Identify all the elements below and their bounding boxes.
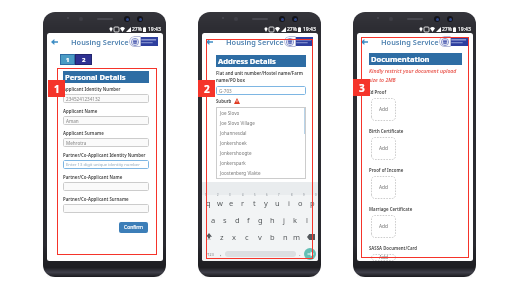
button[interactable]: v xyxy=(255,231,265,242)
staticText: 8 xyxy=(291,193,293,197)
staticText: x xyxy=(232,232,236,242)
button[interactable]: o xyxy=(295,197,305,208)
button[interactable]: s xyxy=(220,214,230,225)
button[interactable]: Jonkershoogte xyxy=(220,148,305,158)
button[interactable]: b xyxy=(267,231,277,242)
button[interactable] xyxy=(63,204,149,213)
staticText: , xyxy=(220,250,222,258)
staticText: j xyxy=(283,215,285,225)
button[interactable]: t xyxy=(249,197,259,208)
button[interactable]: j xyxy=(279,214,289,225)
button[interactable]: Jonkershoek xyxy=(220,138,305,148)
staticText: Partner/Co-Applicant Identity Number xyxy=(63,152,146,158)
staticText: 2 xyxy=(217,193,219,197)
button[interactable]: Mehrotra xyxy=(63,138,149,147)
button[interactable]: Add xyxy=(371,176,396,199)
button[interactable]: z xyxy=(217,231,227,242)
staticText: e xyxy=(229,198,234,208)
staticText: z xyxy=(220,232,224,242)
staticText: Personal Details xyxy=(65,72,126,82)
button[interactable]: Shift xyxy=(203,231,214,242)
staticText: Partner/Co-Applicant Surname xyxy=(63,196,129,202)
staticText: 7 xyxy=(278,193,280,197)
staticText: . xyxy=(299,250,301,258)
staticText: Add xyxy=(379,254,388,261)
button[interactable]: d xyxy=(232,214,242,225)
button[interactable]: 2345241234132 xyxy=(63,94,149,103)
button[interactable]: Backspace xyxy=(305,231,317,242)
button[interactable]: Joe Slovo xyxy=(220,108,305,118)
button[interactable]: Add xyxy=(371,254,396,261)
button[interactable]: Aman xyxy=(63,116,149,125)
button[interactable]: ?123 xyxy=(204,249,216,259)
button[interactable]: m xyxy=(292,231,302,242)
staticText: Add xyxy=(379,106,388,113)
staticText: Partner/Co-Applicant Name xyxy=(63,174,123,180)
staticText: Confirm xyxy=(124,224,144,231)
staticText: Marriage Certificate xyxy=(369,206,413,212)
button[interactable]: h xyxy=(267,214,277,225)
button[interactable]: Jonkerspark xyxy=(220,158,305,168)
staticText: b xyxy=(270,232,275,242)
button[interactable]: a xyxy=(208,214,218,225)
button[interactable]: 1 xyxy=(60,54,75,65)
button[interactable]: x xyxy=(229,231,239,242)
button[interactable]: Add xyxy=(371,98,396,121)
staticText: Id Proof xyxy=(369,89,387,95)
staticText: Address Details xyxy=(218,56,276,66)
staticText: Kindly restrict your document upload siz… xyxy=(369,68,457,84)
staticText: Enter 13 digit unique identity number xyxy=(66,162,140,168)
button[interactable]: i xyxy=(284,197,294,208)
button[interactable]: Joe Slovo Village xyxy=(220,118,305,128)
staticText: Jonkerspark xyxy=(220,160,246,166)
button[interactable]: p xyxy=(307,197,317,208)
staticText: 3 xyxy=(359,81,365,95)
button[interactable]: e xyxy=(226,197,236,208)
staticText: l xyxy=(306,215,308,225)
button[interactable]: w xyxy=(215,197,225,208)
staticText: G-703 xyxy=(219,88,232,94)
staticText: 4 xyxy=(242,193,244,197)
button[interactable]: Enter xyxy=(304,248,316,260)
staticText: 1 xyxy=(54,82,60,96)
button[interactable] xyxy=(63,182,149,191)
button[interactable]: Add xyxy=(371,137,396,160)
staticText: Applicant Identity Number xyxy=(63,86,121,92)
button[interactable]: Back xyxy=(204,36,215,47)
button[interactable]: q xyxy=(203,197,213,208)
staticText: 0 xyxy=(315,193,317,197)
button[interactable]: Confirm xyxy=(119,222,148,233)
staticText: v xyxy=(258,232,262,242)
button[interactable]: c xyxy=(242,231,252,242)
button[interactable]: f xyxy=(243,214,253,225)
staticText: Housing Service xyxy=(381,37,439,47)
staticText: k xyxy=(293,215,298,225)
staticText: Joe Slovo Village xyxy=(220,120,255,126)
staticText: Applicant Name xyxy=(63,108,98,114)
button[interactable]: Enter 13 digit unique identity number xyxy=(63,160,149,169)
staticText: n xyxy=(283,232,288,242)
staticText: Jonkershoek xyxy=(220,140,247,146)
button[interactable]: g xyxy=(255,214,265,225)
button[interactable]: Back xyxy=(49,36,60,47)
button[interactable]: Back xyxy=(359,36,370,47)
button[interactable]: 2 xyxy=(75,54,92,65)
button[interactable]: y xyxy=(261,197,271,208)
button[interactable]: Johannesdal xyxy=(220,128,305,138)
button[interactable]: l xyxy=(302,214,312,225)
staticText: Applicant Surname xyxy=(63,130,104,136)
button[interactable]: Joostenberg Vlakte xyxy=(220,168,305,178)
button[interactable]: r xyxy=(238,197,248,208)
button[interactable]: n xyxy=(280,231,290,242)
button[interactable]: u xyxy=(272,197,282,208)
staticText: g xyxy=(258,215,263,225)
button[interactable]: G-703 xyxy=(216,86,306,95)
staticText: ?123 xyxy=(206,252,214,257)
button[interactable]: k xyxy=(290,214,300,225)
staticText: Documentation xyxy=(371,54,430,64)
staticText: 2345241234132 xyxy=(66,96,101,102)
button[interactable]: Add xyxy=(371,215,396,238)
